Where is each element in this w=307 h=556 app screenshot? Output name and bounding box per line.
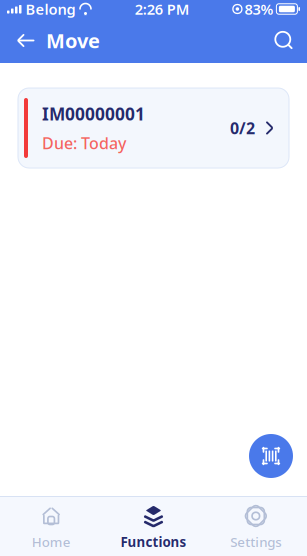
- button[interactable]: Functions: [102, 505, 205, 551]
- button[interactable]: Search: [261, 18, 307, 63]
- staticText: Move: [46, 27, 100, 54]
- button[interactable]: Scan barcode: [249, 434, 293, 478]
- button[interactable]: IM00000001: [18, 88, 289, 168]
- staticText: 0/2: [230, 117, 255, 139]
- staticText: Due: Today: [42, 132, 126, 154]
- staticText: Belong: [25, 0, 75, 19]
- staticText: Functions: [120, 533, 186, 551]
- button[interactable]: Settings: [205, 505, 307, 551]
- staticText: Home: [32, 533, 71, 551]
- staticText: 2:26 PM: [135, 0, 190, 19]
- staticText: 83%: [244, 0, 273, 19]
- button[interactable]: Home: [0, 505, 102, 551]
- button[interactable]: Back: [6, 18, 46, 63]
- staticText: Settings: [230, 533, 281, 551]
- staticText: IM00000001: [42, 102, 145, 125]
